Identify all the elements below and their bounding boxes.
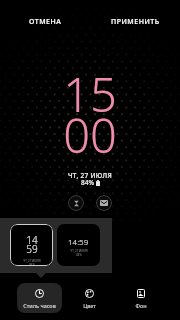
staticText: ЧТ, 27 ИЮЛЯ 84%: [70, 249, 88, 257]
staticText: Фон: [135, 302, 147, 309]
staticText: 14 59: [26, 233, 38, 256]
button[interactable]: ОТМЕНА: [0, 0, 90, 44]
staticText: ЧТ, 27 ИЮЛЯ: [68, 171, 112, 180]
staticText: ПРИМЕНИТЬ: [111, 17, 160, 27]
button[interactable]: ПРИМЕНИТЬ: [90, 0, 180, 44]
staticText: ОТМЕНА: [29, 17, 62, 27]
button[interactable]: 14 59: [10, 224, 53, 266]
staticText: Цвет: [83, 302, 96, 309]
staticText: Стиль часов: [23, 302, 56, 309]
staticText: ЧТ, 27 ИЮЛЯ 84%: [23, 259, 41, 266]
button[interactable]: 14:59: [57, 224, 100, 266]
staticText: 15 00: [63, 62, 117, 167]
button[interactable]: Стиль часов: [17, 283, 62, 313]
staticText: 14:59: [68, 236, 89, 247]
button[interactable]: Timer: [68, 195, 84, 211]
staticText: 84%: [81, 178, 94, 187]
button[interactable]: Фон: [129, 283, 153, 313]
button[interactable]: Цвет: [77, 283, 102, 313]
button[interactable]: Messages: [96, 195, 112, 211]
